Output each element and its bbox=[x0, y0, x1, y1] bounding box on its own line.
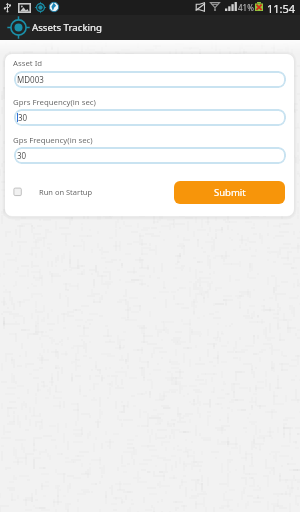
button[interactable]: Run on Startup bbox=[13, 187, 93, 197]
button[interactable]: MD003 bbox=[14, 71, 286, 88]
staticText: Run on Startup bbox=[39, 187, 93, 197]
button[interactable]: Assets Tracking logo bbox=[7, 16, 30, 39]
staticText: 30 bbox=[18, 112, 28, 123]
staticText: 41% bbox=[238, 2, 254, 13]
staticText: Submit bbox=[214, 186, 246, 199]
button[interactable]: 30 bbox=[14, 147, 286, 164]
staticText: Assets Tracking bbox=[32, 21, 103, 34]
button[interactable]: 30 bbox=[14, 109, 286, 126]
staticText: Gps Frequency(in sec) bbox=[13, 135, 93, 146]
staticText: MD003 bbox=[17, 74, 44, 85]
staticText: 11:54 bbox=[267, 1, 296, 16]
staticText: Gprs Frequency(in sec) bbox=[13, 97, 96, 108]
staticText: Asset Id bbox=[13, 58, 43, 69]
button[interactable]: Submit bbox=[174, 181, 285, 204]
staticText: 30 bbox=[17, 150, 27, 161]
